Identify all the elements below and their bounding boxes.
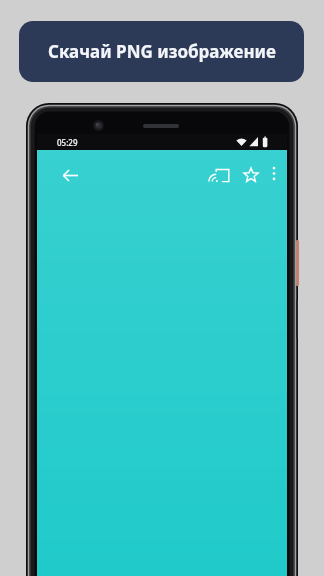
button[interactable]: Bookmark (236, 160, 266, 190)
button[interactable]: Back (55, 160, 85, 190)
staticText: Скачай PNG изображение (48, 40, 276, 63)
button[interactable]: Cast (207, 160, 237, 190)
button[interactable]: More options (261, 160, 287, 186)
button[interactable]: Power (296, 240, 299, 286)
button[interactable]: Скачай PNG изображение (19, 21, 304, 82)
staticText: 05:29 (57, 137, 78, 148)
